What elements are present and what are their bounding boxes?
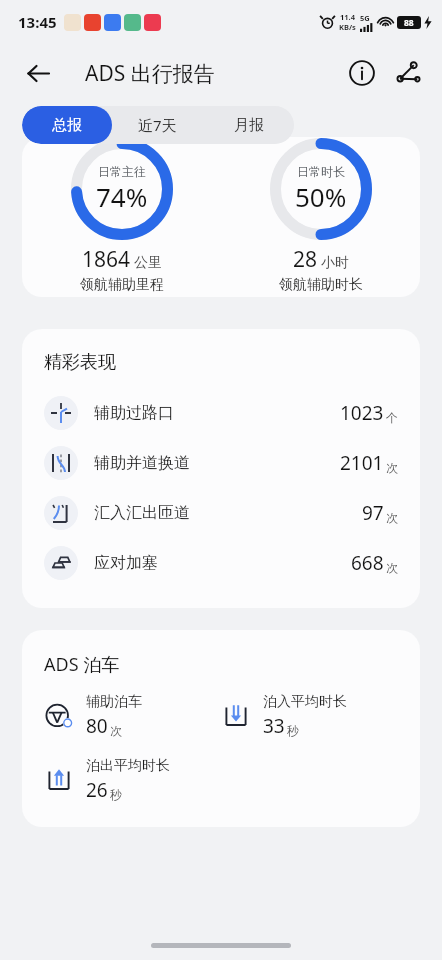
staticText: 秒: [110, 787, 122, 802]
staticText: 5G: [360, 13, 370, 23]
staticText: 次: [110, 723, 122, 738]
staticText: 次: [386, 510, 398, 525]
staticText: 668: [351, 550, 384, 576]
staticText: 日常时长: [297, 164, 345, 179]
staticText: 精彩表现: [44, 351, 116, 374]
staticText: 秒: [287, 723, 299, 738]
staticText: 11.4: [340, 12, 355, 22]
button[interactable]: Back: [16, 51, 60, 95]
staticText: 97: [362, 500, 384, 526]
staticText: 33: [263, 713, 285, 739]
button[interactable]: 辅助并道换道: [44, 438, 398, 488]
staticText: 泊入平均时长: [263, 693, 347, 711]
staticText: 月报: [234, 116, 264, 135]
staticText: 公里: [134, 254, 162, 272]
staticText: 辅助并道换道: [94, 453, 190, 473]
button[interactable]: 泊出平均时长: [44, 757, 221, 803]
staticText: 28: [293, 245, 318, 274]
staticText: 个: [386, 410, 398, 425]
staticText: 次: [386, 560, 398, 575]
button[interactable]: Share: [386, 51, 430, 95]
staticText: 次: [386, 460, 398, 475]
staticText: 汇入汇出匝道: [94, 503, 190, 523]
button[interactable]: 日常主往: [22, 137, 420, 297]
staticText: 1023: [340, 400, 384, 426]
button[interactable]: Info: [340, 51, 384, 95]
button[interactable]: 月报: [203, 106, 294, 144]
staticText: 辅助泊车: [86, 693, 142, 711]
staticText: 近7天: [138, 115, 177, 135]
staticText: ADS 泊车: [44, 652, 120, 677]
staticText: 日常主往: [98, 164, 146, 179]
staticText: 80: [86, 713, 108, 739]
staticText: 1864: [82, 245, 131, 274]
staticText: 50%: [295, 179, 347, 214]
staticText: 88: [404, 17, 414, 29]
staticText: 泊出平均时长: [86, 757, 170, 775]
staticText: 小时: [321, 254, 349, 272]
button[interactable]: 总报: [22, 106, 112, 144]
staticText: KB/s: [339, 22, 356, 32]
button[interactable]: 辅助泊车: [44, 693, 221, 739]
button[interactable]: 应对加塞: [44, 538, 398, 588]
staticText: 领航辅助时长: [279, 276, 363, 294]
button[interactable]: 汇入汇出匝道: [44, 488, 398, 538]
staticText: ADS 出行报告: [85, 59, 215, 88]
staticText: 13:45: [18, 12, 57, 32]
button[interactable]: 泊入平均时长: [221, 693, 398, 739]
staticText: 领航辅助里程: [80, 276, 164, 294]
staticText: 26: [86, 777, 108, 803]
button[interactable]: 近7天: [112, 106, 203, 144]
staticText: 辅助过路口: [94, 403, 174, 423]
staticText: 应对加塞: [94, 553, 158, 573]
staticText: 2101: [340, 450, 384, 476]
button[interactable]: 辅助过路口: [44, 388, 398, 438]
staticText: 总报: [52, 116, 82, 135]
staticText: 74%: [96, 179, 148, 214]
